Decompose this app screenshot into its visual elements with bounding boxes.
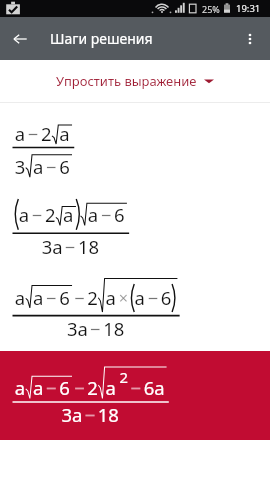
staticText: Упростить выражение <box>56 72 197 90</box>
button[interactable]: Back <box>0 19 40 59</box>
staticText: Шаги решения <box>50 29 153 48</box>
button[interactable]: More options <box>230 19 270 59</box>
staticText: 19:31 <box>236 2 261 15</box>
staticText: 25% <box>202 3 220 15</box>
button[interactable]: Упростить выражение <box>0 60 270 102</box>
